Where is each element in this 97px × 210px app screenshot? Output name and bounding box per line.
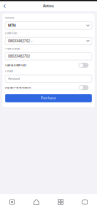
staticText: Network [5, 16, 14, 19]
staticText: Amount [8, 77, 20, 81]
staticText: Phone Number [5, 47, 20, 50]
staticText: Amount [5, 70, 13, 73]
button[interactable]: Back [0, 2, 9, 10]
staticText: Purchase [41, 96, 56, 100]
button[interactable]: Home [24, 194, 48, 210]
staticText: Bypass Phone Number [5, 86, 31, 89]
staticText: 08033482702 - [8, 39, 33, 43]
button[interactable]: Messages [73, 194, 97, 210]
button[interactable]: Purchase [5, 94, 92, 102]
staticText: Beneficiary [5, 32, 17, 35]
staticText: Save as Beneficiary [5, 64, 26, 67]
staticText: Airtime [43, 4, 54, 8]
button[interactable]: Services [48, 194, 73, 210]
button[interactable]: Accounts [0, 194, 24, 210]
staticText: 08033482702 [8, 54, 30, 58]
staticText: MTN [8, 23, 16, 28]
